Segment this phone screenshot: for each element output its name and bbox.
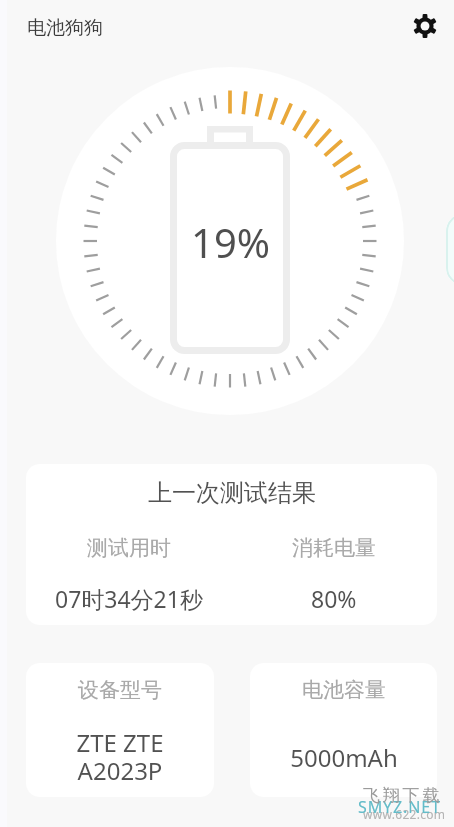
button[interactable]: 设备型号 <box>26 663 214 797</box>
staticText: SMYZ.NET <box>358 796 441 818</box>
button[interactable]: Settings <box>401 2 449 50</box>
staticText: 电池容量 <box>302 677 386 703</box>
staticText: 电池狗狗 <box>27 16 103 40</box>
button[interactable]: 电池容量 <box>250 663 437 797</box>
staticText: 飞翔下载 <box>363 785 443 806</box>
staticText: www.622.com <box>363 806 446 822</box>
staticText: 设备型号 <box>78 677 162 703</box>
staticText: ZTE ZTE A2023P <box>76 726 164 787</box>
staticText: 消耗电量 <box>292 535 376 561</box>
button[interactable]: Floating assistant <box>446 214 454 285</box>
staticText: 80% <box>311 583 357 614</box>
staticText: 测试用时 <box>87 535 171 561</box>
button[interactable]: 上一次测试结果 <box>26 464 437 625</box>
staticText: 上一次测试结果 <box>148 478 316 508</box>
staticText: 07时34分21秒 <box>55 583 203 614</box>
staticText: 5000mAh <box>290 741 398 774</box>
staticText: 19% <box>191 215 270 269</box>
